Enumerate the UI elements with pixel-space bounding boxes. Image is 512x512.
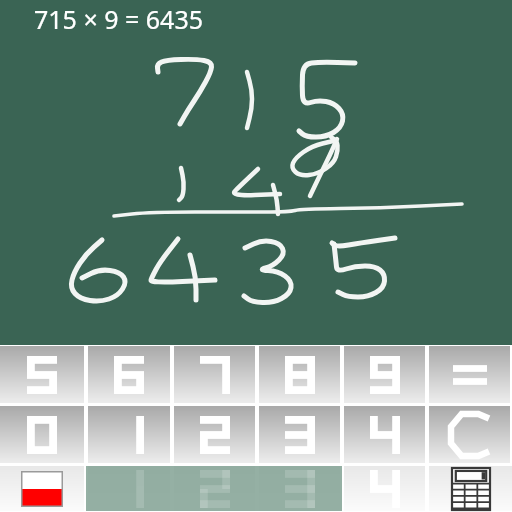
button[interactable] bbox=[88, 466, 170, 511]
button[interactable] bbox=[174, 466, 255, 511]
button[interactable]: Equals bbox=[429, 346, 510, 403]
button[interactable] bbox=[344, 406, 425, 463]
button[interactable] bbox=[259, 406, 340, 463]
staticText: 715 × 9 = 6435 bbox=[34, 2, 204, 36]
button[interactable] bbox=[0, 346, 84, 403]
button[interactable] bbox=[88, 466, 170, 511]
button[interactable] bbox=[88, 346, 170, 403]
button[interactable] bbox=[174, 406, 255, 463]
button[interactable] bbox=[344, 466, 425, 511]
button[interactable] bbox=[174, 346, 255, 403]
button[interactable] bbox=[259, 466, 340, 511]
button[interactable] bbox=[174, 466, 255, 511]
button[interactable]: Clear bbox=[429, 406, 510, 463]
button[interactable] bbox=[0, 406, 84, 463]
button[interactable] bbox=[344, 346, 425, 403]
button[interactable] bbox=[88, 406, 170, 463]
button[interactable] bbox=[259, 346, 340, 403]
button[interactable]: Language bbox=[0, 466, 84, 511]
button[interactable] bbox=[259, 466, 340, 511]
button[interactable]: Calculator bbox=[429, 466, 512, 511]
